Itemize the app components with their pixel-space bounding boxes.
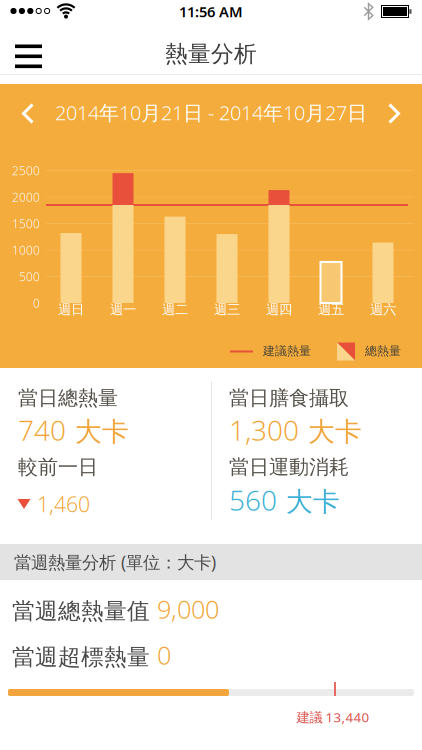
staticText: 總熱量 [365,344,401,358]
staticText: 當日運動消耗 [229,455,349,479]
staticText: 當日膳食攝取 [229,386,349,410]
staticText: 560 [229,481,277,519]
staticText: 大卡 [75,416,129,448]
staticText: 週五 [318,301,344,318]
staticText: 大卡 [286,486,340,518]
staticText: 2000 [12,189,40,205]
staticText: 11:56 AM [179,2,243,21]
staticText: 當日總熱量 [18,386,118,410]
staticText: 0 [33,295,40,311]
button[interactable] [388,103,400,124]
staticText: 1500 [12,215,40,231]
staticText: 當週總熱量值 [12,597,150,625]
staticText: 週日 [58,301,84,318]
staticText: 1000 [12,242,40,258]
staticText: 建議 13,440 [296,708,369,726]
staticText: 500 [19,268,40,284]
staticText: 2014年10月21日 - 2014年10月27日 [55,99,367,126]
staticText: 週六 [370,301,396,318]
staticText: 0 [157,638,171,672]
button[interactable] [22,103,34,124]
staticText: 週二 [162,301,188,318]
staticText: 大卡 [308,416,362,448]
button[interactable] [15,44,42,68]
staticText: 熱量分析 [165,40,257,68]
staticText: 9,000 [157,592,219,626]
staticText: 較前一日 [18,455,98,479]
staticText: 1,460 [37,490,90,518]
staticText: 週三 [214,301,240,318]
staticText: 週一 [110,301,136,318]
staticText: 當週熱量分析 (單位：大卡) [14,550,216,573]
staticText: 週四 [266,301,292,318]
staticText: 當週超標熱量 [12,643,150,671]
staticText: 2500 [12,162,40,178]
staticText: 1,300 [229,411,299,449]
staticText: 740 [18,411,66,449]
staticText: 建議熱量 [263,344,311,358]
